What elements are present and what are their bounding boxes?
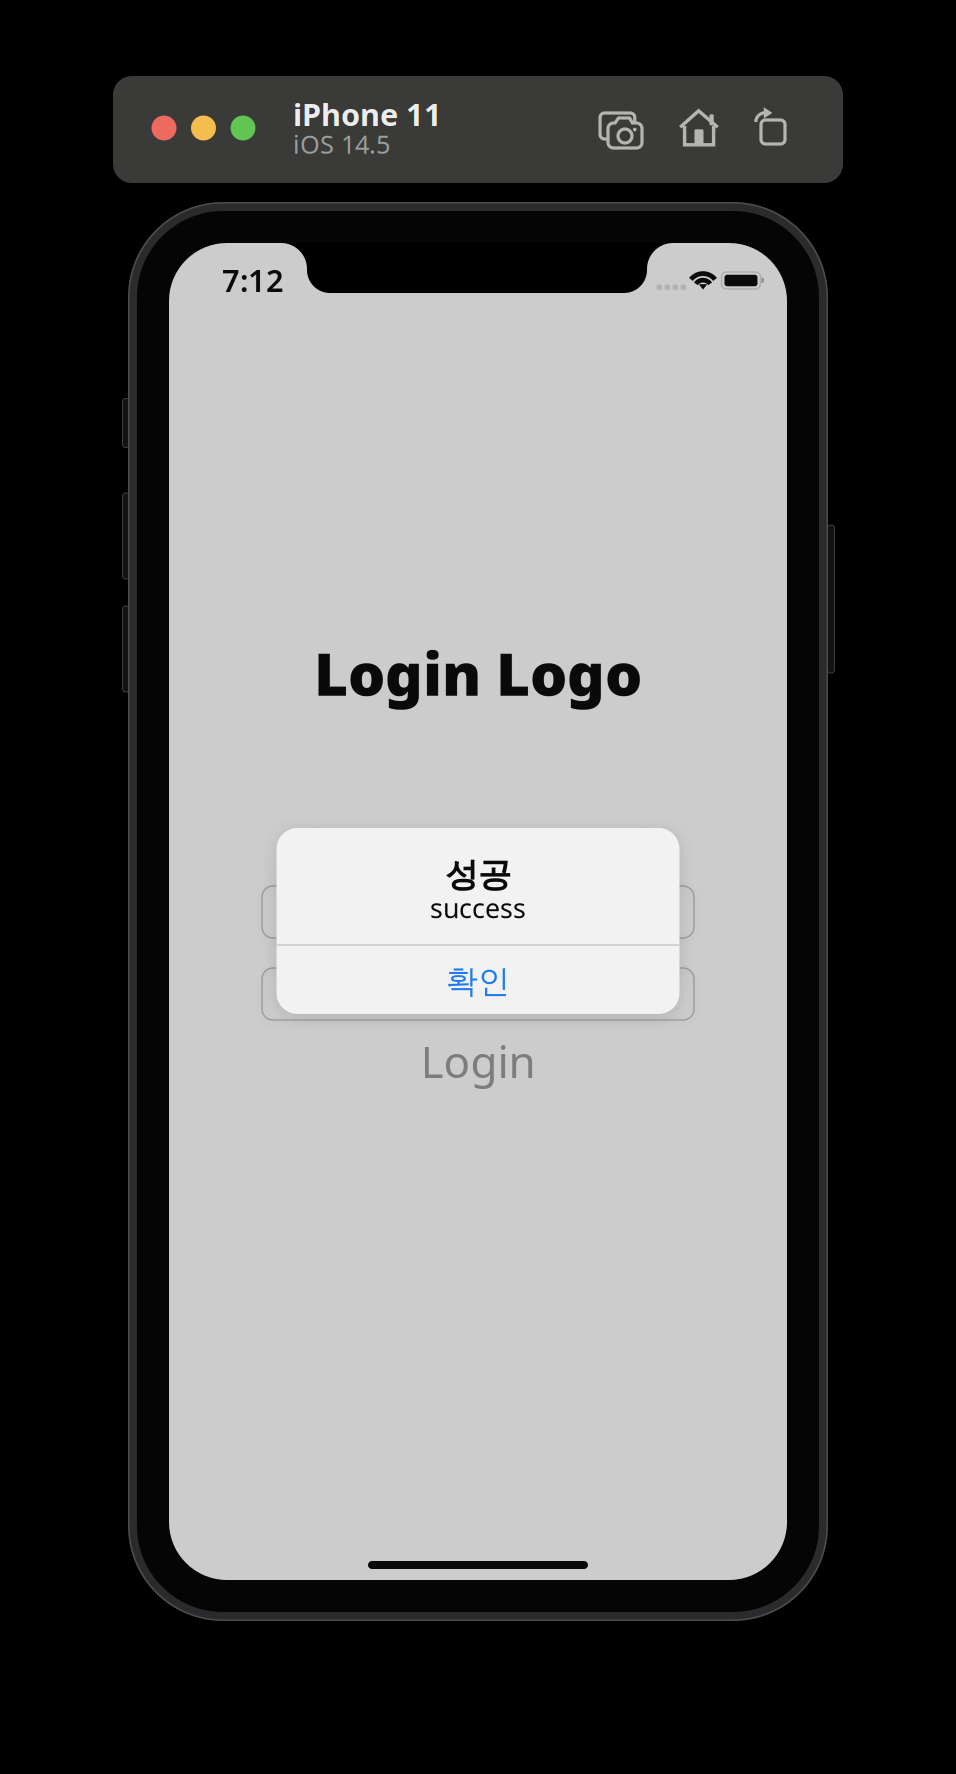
button[interactable]: Screenshot — [591, 101, 651, 159]
staticText: Login Logo — [314, 634, 642, 712]
button[interactable]: Login — [378, 1031, 578, 1091]
staticText: Login — [420, 1032, 535, 1090]
staticText: 확인 — [446, 962, 510, 1001]
staticText: 7:12 — [222, 260, 284, 300]
staticText: 성공 — [445, 854, 511, 895]
button[interactable]: Home — [669, 98, 729, 156]
staticText: success — [430, 890, 526, 926]
button[interactable]: 확인 — [276, 947, 679, 1016]
staticText: iPhone 11 — [293, 94, 442, 134]
staticText: iOS 14.5 — [293, 127, 390, 161]
button[interactable]: Rotate — [741, 96, 801, 156]
